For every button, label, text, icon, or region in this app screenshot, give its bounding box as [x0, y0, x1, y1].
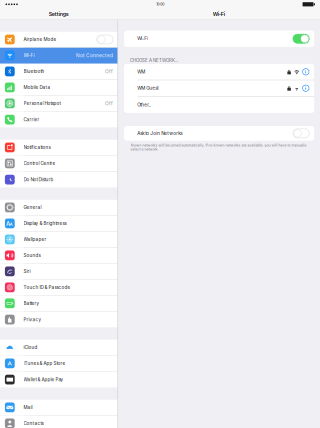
staticText: Off	[105, 68, 113, 74]
staticText: iCloud	[23, 345, 37, 350]
button[interactable]: Mobile Data	[0, 80, 118, 96]
staticText: Bluetooth	[23, 69, 44, 74]
button[interactable]: Display & Brightness	[0, 216, 118, 232]
button[interactable]: iCloud	[0, 340, 118, 356]
staticText: Wallet & Apple Pay	[23, 377, 63, 382]
staticText: Carrier	[23, 117, 39, 122]
staticText: Do Not Disturb	[23, 177, 53, 182]
button[interactable]: Privacy	[0, 312, 118, 328]
staticText: Wi-Fi	[137, 36, 148, 41]
button[interactable]: Wallet & Apple Pay	[0, 372, 118, 388]
staticText: Wi-Fi	[213, 11, 225, 17]
staticText: Touch ID & Passcode	[23, 285, 70, 290]
button[interactable]: Ask to Join Networks	[124, 126, 314, 141]
staticText: CHOOSE A NETWORK...	[130, 58, 178, 63]
button[interactable]: Control Centre	[0, 156, 118, 172]
staticText: Privacy	[23, 317, 41, 322]
staticText: Notifications	[23, 145, 50, 150]
button[interactable]: Siri	[0, 264, 118, 280]
staticText: Display & Brightness	[23, 221, 66, 226]
staticText: 10:00	[156, 2, 164, 6]
button[interactable]: Battery	[0, 296, 118, 312]
staticText: WM	[137, 69, 145, 75]
staticText: Sounds	[23, 253, 40, 258]
staticText: Mobile Data	[23, 85, 50, 90]
button[interactable]: Wi-Fi	[118, 9, 320, 20]
staticText: Not Connected	[76, 52, 113, 58]
button[interactable]: iTunes & App Store	[0, 356, 118, 372]
button[interactable]: WM Guest	[124, 80, 314, 97]
button[interactable]: General	[0, 200, 118, 216]
staticText: Wallpaper	[23, 237, 46, 242]
button[interactable]: Mail	[0, 400, 118, 416]
staticText: Siri	[23, 269, 30, 274]
staticText: Airplane Mode	[23, 37, 56, 42]
staticText: General	[23, 205, 41, 210]
staticText: Battery	[23, 301, 39, 306]
staticText: Known networks will be joined automatica…	[131, 143, 307, 151]
button[interactable]: Notifications	[0, 140, 118, 156]
button[interactable]: WM	[124, 64, 314, 80]
button[interactable]: Do Not Disturb	[0, 172, 118, 188]
staticText: Mail	[23, 405, 32, 410]
staticText: iTunes & App Store	[23, 361, 65, 366]
button[interactable]: Contacts	[0, 416, 118, 428]
button[interactable]: Carrier	[0, 112, 118, 128]
button[interactable]: Bluetooth	[0, 64, 118, 80]
staticText: Control Centre	[23, 161, 55, 166]
button[interactable]: Settings	[0, 9, 118, 20]
staticText: Wi-Fi	[23, 53, 34, 58]
button[interactable]: Touch ID & Passcode	[0, 280, 118, 296]
staticText: Off	[105, 100, 113, 106]
button[interactable]: Other...	[124, 97, 314, 113]
staticText: Settings	[49, 11, 69, 17]
staticText: Personal Hotspot	[23, 101, 60, 106]
staticText: WM Guest	[137, 85, 158, 91]
button[interactable]: Sounds	[0, 248, 118, 264]
staticText: Other...	[137, 102, 151, 107]
button[interactable]: Airplane Mode	[0, 32, 118, 48]
staticText: Contacts	[23, 421, 43, 426]
button[interactable]: Personal Hotspot	[0, 96, 118, 112]
button[interactable]: Wi-Fi	[0, 48, 118, 64]
staticText: Ask to Join Networks	[137, 131, 182, 136]
button[interactable]: Wi-Fi	[124, 30, 314, 47]
button[interactable]: Wallpaper	[0, 232, 118, 248]
